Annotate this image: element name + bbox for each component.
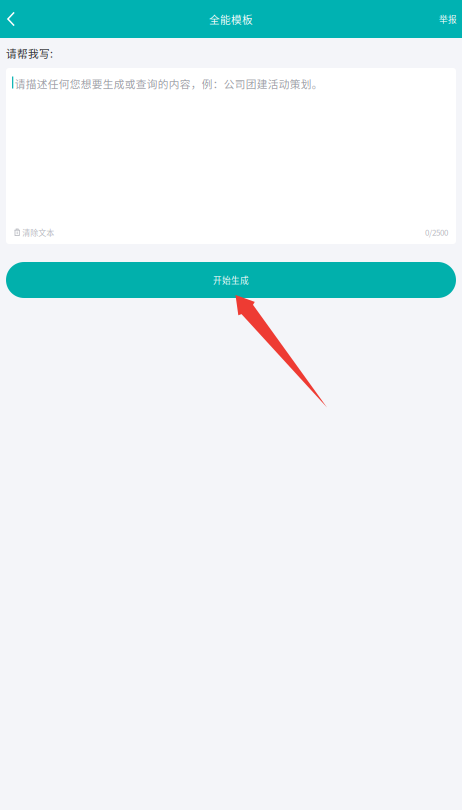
staticText: 请描述任何您想要生成或查询的内容，例：公司团建活动策划。 (15, 76, 323, 91)
button[interactable]: 清除文本 (6, 225, 54, 239)
staticText: 0/2500 (425, 226, 448, 238)
button[interactable]: 举报 (439, 0, 462, 38)
staticText: 请帮我写: (6, 45, 53, 61)
staticText: 清除文本 (22, 226, 54, 238)
staticText: 全能模板 (209, 11, 253, 27)
button[interactable]: 返回 (0, 0, 22, 38)
staticText: 举报 (439, 13, 457, 25)
staticText: 开始生成 (213, 274, 249, 286)
button[interactable]: 开始生成 (6, 262, 456, 298)
